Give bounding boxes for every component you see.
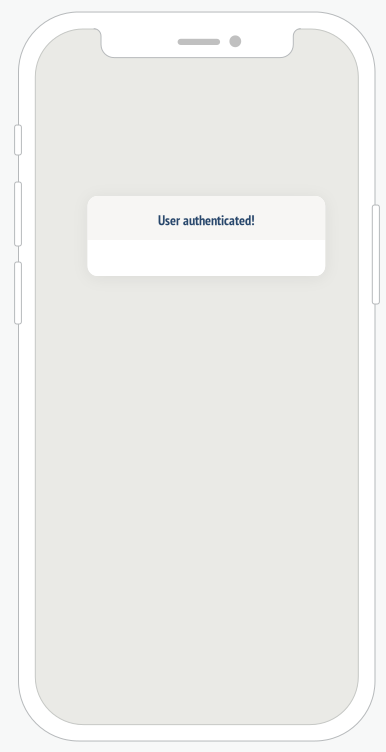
staticText: User authenticated! xyxy=(158,211,255,229)
